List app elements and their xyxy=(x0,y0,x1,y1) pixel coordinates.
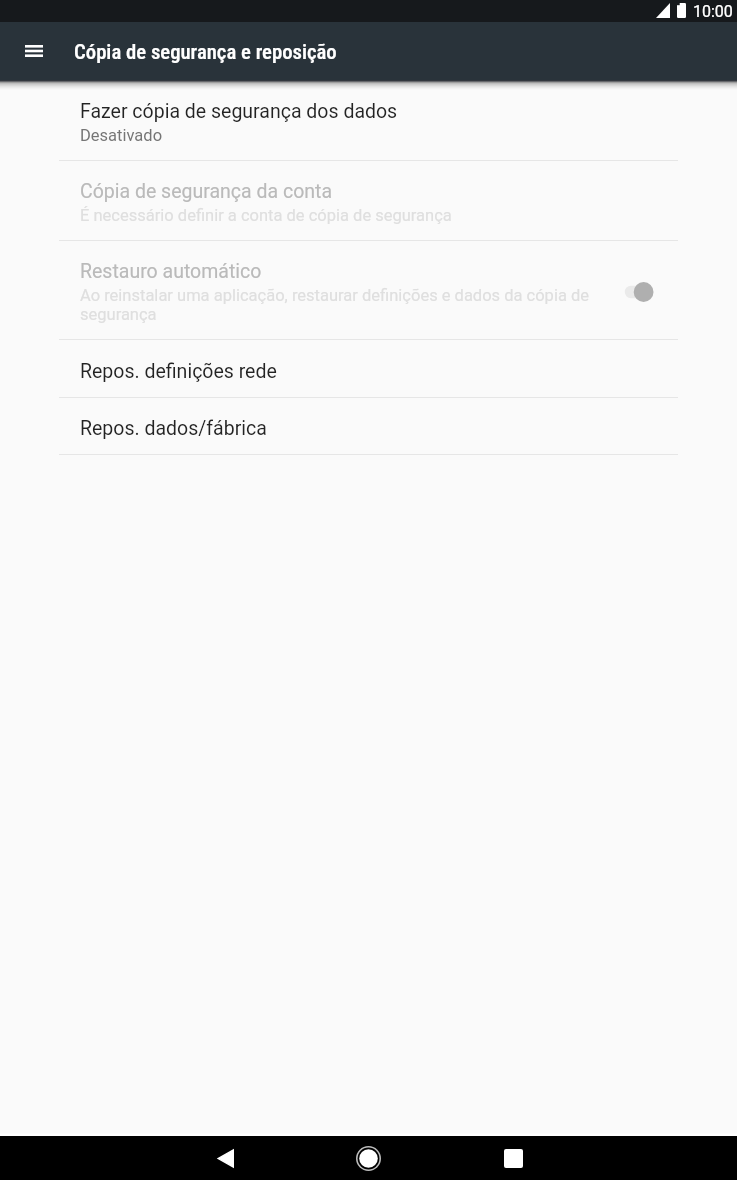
button[interactable]: Restauro automático xyxy=(0,241,737,340)
staticText: Cópia de segurança da conta xyxy=(80,180,333,203)
staticText: Repos. dados/fábrica xyxy=(80,417,267,440)
button[interactable]: Cópia de segurança da conta xyxy=(0,161,737,241)
staticText: Desativado xyxy=(80,126,163,145)
staticText: Fazer cópia de segurança dos dados xyxy=(80,100,398,123)
staticText: Ao reinstalar uma aplicação, restaurar d… xyxy=(80,286,614,324)
staticText: É necessário definir a conta de cópia de… xyxy=(80,206,452,225)
button[interactable]: Recent apps xyxy=(483,1136,543,1180)
button[interactable]: Home xyxy=(338,1136,398,1180)
staticText: Restauro automático xyxy=(80,260,262,283)
button[interactable]: Fazer cópia de segurança dos dados xyxy=(0,83,737,161)
staticText: Repos. definições rede xyxy=(80,360,277,383)
staticText: Cópia de segurança e reposição xyxy=(74,40,337,64)
button[interactable]: Repos. dados/fábrica xyxy=(0,398,737,455)
button[interactable]: Restauro automático, ligado xyxy=(624,276,678,308)
other: Mobile signal xyxy=(656,3,670,18)
staticText: 10:00 xyxy=(693,2,733,21)
button[interactable]: Back xyxy=(195,1136,255,1180)
other: Battery full xyxy=(677,3,686,18)
button[interactable]: Repos. definições rede xyxy=(0,340,737,398)
button[interactable]: Open navigation drawer xyxy=(8,25,60,77)
